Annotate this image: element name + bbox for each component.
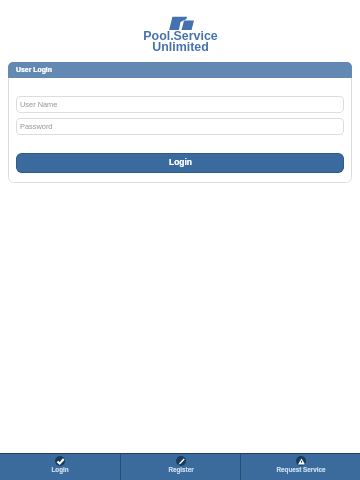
button[interactable]: Register	[121, 454, 240, 480]
staticText: Login	[169, 157, 192, 166]
button[interactable]: Login	[16, 153, 344, 173]
staticText: Pool.Service Unlimited	[143, 29, 218, 53]
button[interactable]: Password	[16, 118, 344, 135]
staticText: User Login	[16, 66, 52, 74]
other: Request Service	[296, 456, 306, 466]
button[interactable]: Login	[0, 454, 120, 480]
staticText: Register	[168, 466, 194, 473]
button[interactable]: User Name	[16, 96, 344, 113]
staticText: User Name	[20, 100, 58, 108]
other: Register	[176, 456, 186, 466]
other: Login	[55, 456, 65, 466]
staticText: Request Service	[276, 466, 326, 473]
staticText: Password	[20, 122, 53, 130]
button[interactable]: Request Service	[241, 454, 360, 480]
staticText: Login	[51, 466, 69, 473]
